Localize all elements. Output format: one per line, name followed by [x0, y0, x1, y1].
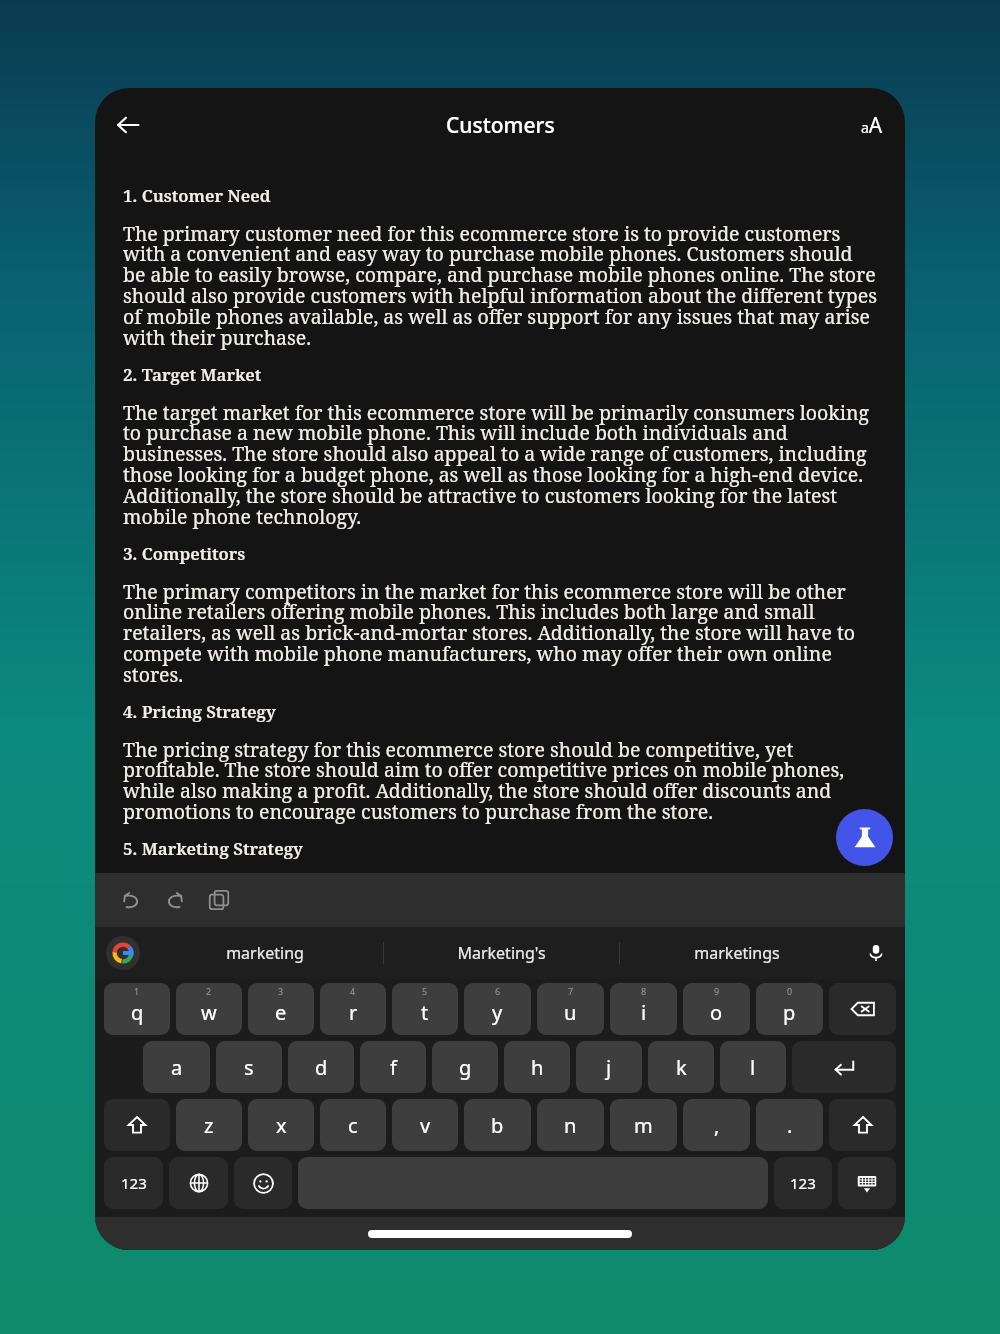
button[interactable]: d [288, 1041, 354, 1093]
staticText: k [676, 1054, 687, 1081]
button[interactable]: a [143, 1041, 210, 1093]
button[interactable]: . [756, 1099, 823, 1151]
button[interactable]: marketing [147, 927, 383, 979]
button[interactable]: v [392, 1099, 458, 1151]
staticText: e [275, 999, 287, 1026]
button[interactable]: Emoji [234, 1157, 292, 1209]
button[interactable]: t [392, 983, 458, 1035]
button[interactable]: Language [169, 1157, 228, 1209]
staticText: The pricing strategy for this ecommerce … [123, 736, 877, 825]
button[interactable]: Undo [109, 878, 153, 922]
button[interactable]: Shift [104, 1099, 170, 1151]
button[interactable]: 123 [774, 1157, 832, 1209]
button[interactable]: AI assistant [836, 809, 893, 866]
button[interactable]: Enter [792, 1041, 896, 1093]
staticText: 123 [790, 1173, 816, 1193]
staticText: r [349, 999, 358, 1026]
button[interactable]: e [248, 983, 314, 1035]
staticText: 5. Marketing Strategy [123, 837, 303, 860]
button[interactable]: , [683, 1099, 750, 1151]
staticText: m [634, 1112, 653, 1139]
button[interactable]: marketings [619, 927, 855, 979]
button[interactable]: n [537, 1099, 604, 1151]
staticText: s [244, 1054, 254, 1081]
staticText: , [714, 1112, 720, 1139]
button[interactable]: Paste [197, 878, 241, 922]
button[interactable]: s [216, 1041, 282, 1093]
button[interactable]: y [464, 983, 531, 1035]
staticText: Customers [446, 111, 555, 140]
staticText: o [710, 999, 723, 1026]
button[interactable]: k [648, 1041, 714, 1093]
staticText: g [459, 1054, 472, 1081]
staticText: 3. Competitors [123, 542, 246, 565]
staticText: n [564, 1112, 577, 1139]
staticText: aA [861, 111, 883, 140]
button[interactable]: Text size [847, 100, 897, 150]
staticText: i [641, 999, 647, 1026]
staticText: a [171, 1054, 183, 1081]
staticText: h [531, 1054, 544, 1081]
button[interactable]: c [320, 1099, 386, 1151]
staticText: 8 [641, 985, 647, 997]
staticText: b [491, 1112, 504, 1139]
button[interactable]: b [464, 1099, 531, 1151]
staticText: d [315, 1054, 328, 1081]
button[interactable]: p [756, 983, 823, 1035]
staticText: t [421, 999, 429, 1026]
staticText: l [750, 1054, 756, 1081]
staticText: The target market for this ecommerce sto… [123, 399, 877, 530]
staticText: 5 [422, 985, 428, 997]
button[interactable]: Hide keyboard [838, 1157, 896, 1209]
staticText: p [783, 999, 796, 1026]
button[interactable]: Shift [829, 1099, 896, 1151]
staticText: 1. Customer Need [123, 184, 271, 207]
button[interactable]: Back [103, 100, 153, 150]
staticText: . [787, 1112, 793, 1139]
staticText: q [131, 999, 144, 1026]
staticText: The primary customer need for this ecomm… [123, 220, 877, 351]
staticText: y [492, 999, 503, 1026]
staticText: w [201, 999, 217, 1026]
button[interactable]: u [537, 983, 604, 1035]
button[interactable]: g [432, 1041, 498, 1093]
staticText: 9 [714, 985, 720, 997]
button[interactable]: l [720, 1041, 786, 1093]
staticText: v [420, 1112, 431, 1139]
button[interactable]: 123 [104, 1157, 163, 1209]
staticText: z [204, 1112, 214, 1139]
button[interactable]: o [683, 983, 750, 1035]
staticText: 3 [278, 985, 284, 997]
button[interactable]: Marketing's [383, 927, 619, 979]
staticText: 7 [568, 985, 574, 997]
button[interactable]: i [610, 983, 677, 1035]
staticText: marketing [226, 942, 304, 964]
button[interactable]: w [176, 983, 242, 1035]
staticText: 1 [134, 985, 140, 997]
button[interactable]: m [610, 1099, 677, 1151]
staticText: j [606, 1054, 612, 1081]
button[interactable]: h [504, 1041, 570, 1093]
staticText: 6 [495, 985, 501, 997]
staticText: 2. Target Market [123, 363, 262, 386]
button[interactable]: x [248, 1099, 314, 1151]
staticText: marketings [694, 942, 780, 964]
staticText: 2 [206, 985, 212, 997]
staticText: The primary competitors in the market fo… [123, 578, 877, 688]
button[interactable]: r [320, 983, 386, 1035]
staticText: f [390, 1054, 397, 1081]
button[interactable]: Backspace [829, 983, 896, 1035]
staticText: 4. Pricing Strategy [123, 700, 276, 723]
staticText: 123 [121, 1173, 147, 1193]
staticText: 0 [787, 985, 793, 997]
button[interactable]: j [576, 1041, 642, 1093]
button[interactable]: Voice input [855, 932, 897, 974]
button[interactable]: q [104, 983, 170, 1035]
button[interactable]: Redo [153, 878, 197, 922]
button[interactable]: f [360, 1041, 426, 1093]
staticText: 4 [350, 985, 356, 997]
staticText: c [348, 1112, 358, 1139]
button[interactable]: Google [101, 931, 145, 975]
button[interactable]: z [176, 1099, 242, 1151]
